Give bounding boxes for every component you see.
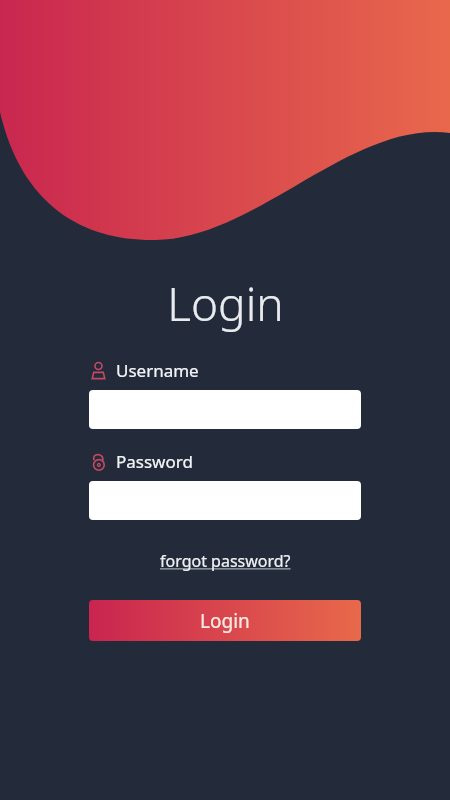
button[interactable]: Password input field (89, 481, 361, 520)
staticText: forgot password? (160, 550, 291, 572)
button[interactable]: Login (89, 600, 361, 641)
staticText: Login (167, 272, 284, 335)
button[interactable]: forgot password? (156, 548, 295, 574)
staticText: Login (200, 608, 250, 634)
button[interactable]: Username input field (89, 390, 361, 429)
staticText: Password (116, 450, 193, 473)
staticText: Username (116, 359, 199, 382)
